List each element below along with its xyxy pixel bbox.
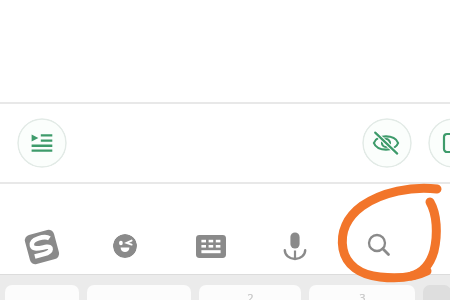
button[interactable]: Emoji — [113, 234, 137, 258]
button[interactable]: Search — [364, 230, 392, 258]
staticText: 2 — [247, 290, 254, 300]
button[interactable]: Voice input — [283, 230, 307, 262]
button[interactable]: Formatting — [17, 118, 67, 168]
button[interactable]: Hide — [362, 118, 412, 168]
button[interactable]: More — [428, 118, 450, 168]
button[interactable]: Keyboard — [196, 235, 226, 258]
button[interactable]: SwiftKey — [22, 227, 62, 267]
staticText: 3 — [359, 290, 366, 300]
button[interactable]: 2 — [199, 285, 301, 300]
button[interactable]: 3 — [309, 285, 415, 300]
